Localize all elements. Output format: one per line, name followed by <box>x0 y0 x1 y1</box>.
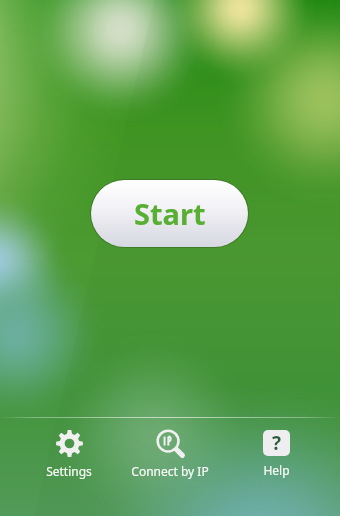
button[interactable]: ? <box>226 430 326 478</box>
staticText: Settings <box>46 463 92 479</box>
staticText: Connect by IP <box>131 463 209 479</box>
staticText: ? <box>272 430 282 456</box>
button[interactable]: Connect by IP <box>120 430 220 479</box>
staticText: Start <box>134 194 206 233</box>
button[interactable]: Settings <box>19 430 119 479</box>
staticText: Help <box>263 462 290 478</box>
button[interactable]: Start <box>91 180 248 247</box>
